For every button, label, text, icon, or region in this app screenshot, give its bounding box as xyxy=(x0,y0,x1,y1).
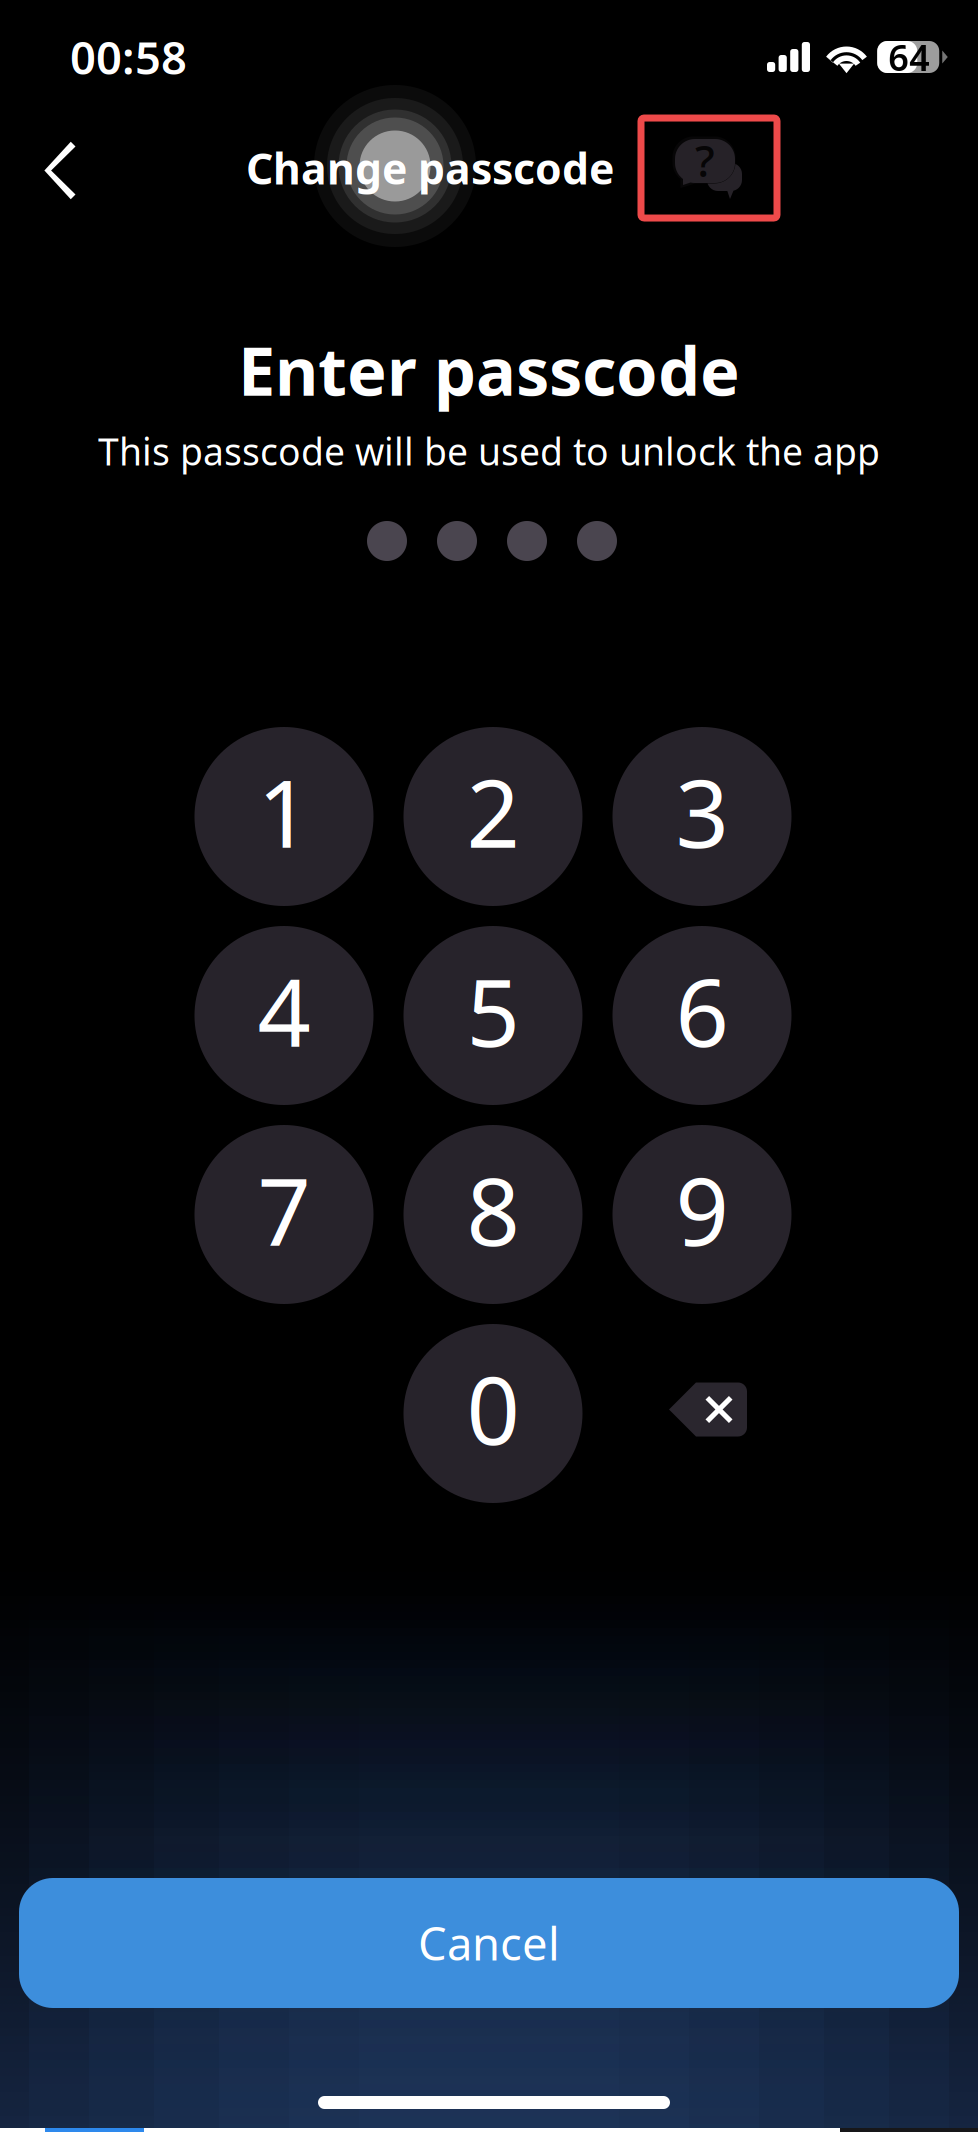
staticText: 1 xyxy=(257,749,310,873)
staticText: 2 xyxy=(466,749,519,873)
button[interactable]: 1 xyxy=(194,727,373,906)
button[interactable]: 7 xyxy=(194,1125,373,1304)
button[interactable]: 8 xyxy=(403,1125,582,1304)
staticText: 9 xyxy=(675,1147,728,1271)
staticText: 4 xyxy=(257,948,310,1072)
button[interactable]: 2 xyxy=(403,727,582,906)
button[interactable]: 9 xyxy=(612,1125,791,1304)
button[interactable]: 6 xyxy=(612,926,791,1105)
staticText: Change passcode xyxy=(246,140,614,196)
button[interactable]: Help xyxy=(641,118,777,218)
staticText: 8 xyxy=(466,1147,519,1271)
button[interactable]: 3 xyxy=(612,727,791,906)
staticText: 5 xyxy=(466,948,519,1072)
staticText: 00:58 xyxy=(70,27,187,87)
staticText: Enter passcode xyxy=(238,326,740,414)
staticText: 3 xyxy=(675,749,728,873)
staticText: 64 xyxy=(888,33,930,81)
staticText: 7 xyxy=(257,1147,310,1271)
staticText: This passcode will be used to unlock the… xyxy=(98,426,880,476)
staticText: 0 xyxy=(466,1346,519,1470)
staticText: ? xyxy=(695,131,715,189)
button[interactable]: 4 xyxy=(194,926,373,1105)
button[interactable]: 5 xyxy=(403,926,582,1105)
button[interactable]: Cancel xyxy=(19,1878,959,2008)
button[interactable]: Delete xyxy=(612,1324,791,1503)
button[interactable]: 0 xyxy=(403,1324,582,1503)
staticText: Cancel xyxy=(418,1913,560,1973)
staticText: 6 xyxy=(675,948,728,1072)
button[interactable]: Back xyxy=(18,126,106,214)
